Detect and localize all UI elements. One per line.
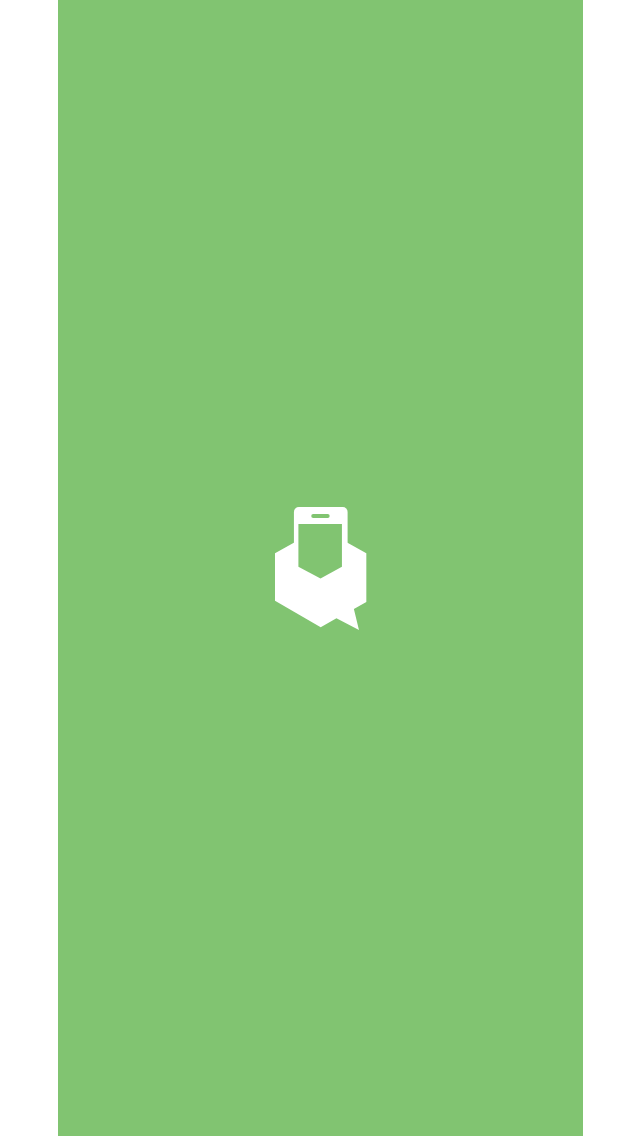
button[interactable]: App logo (275, 507, 367, 630)
